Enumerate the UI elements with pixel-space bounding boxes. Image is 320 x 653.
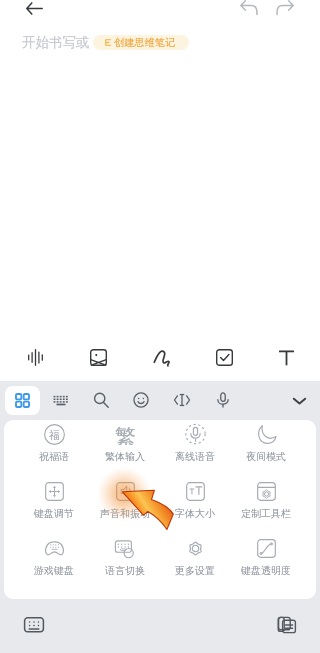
button[interactable]: 键盘调节 [19,481,89,531]
button[interactable]: Voice input [206,383,240,417]
staticText: 声音和振动 [100,507,150,520]
button[interactable]: Back [18,0,50,24]
staticText: 繁 [115,424,136,445]
button[interactable]: Handwriting [145,340,179,374]
button[interactable]: Text style [269,340,303,374]
button[interactable]: 键盘透明度 [231,538,301,588]
staticText: 祝福语 [39,450,69,463]
button[interactable]: 夜间模式 [231,424,301,474]
button[interactable]: 字体大小 [160,481,230,531]
button[interactable]: Clipboard [271,609,303,641]
button[interactable]: 离线语音 [160,424,230,474]
button[interactable]: Undo [233,0,265,24]
staticText: 字体大小 [175,507,215,520]
button[interactable]: Redo [269,0,301,24]
button[interactable]: Emoji [124,383,158,417]
button[interactable]: Panel menu [5,386,40,415]
staticText: 定制工具栏 [241,507,291,520]
button[interactable]: 游戏键盘 [19,538,89,588]
staticText: 福 [49,428,60,442]
button[interactable]: Collapse keyboard [282,383,316,417]
button[interactable]: Show keyboard [18,609,50,641]
button[interactable]: 语言切换 [90,538,160,588]
staticText: 游戏键盘 [34,564,74,577]
button[interactable]: Move cursor [165,383,199,417]
staticText: 键盘透明度 [241,564,291,577]
button[interactable]: 繁 [90,424,160,474]
button[interactable]: 创建思维笔记 [93,35,189,50]
button[interactable]: Keyboard [44,383,78,417]
button[interactable]: Search [84,383,118,417]
staticText: 离线语音 [175,450,215,463]
staticText: 创建思维笔记 [114,36,176,49]
staticText: 键盘调节 [34,507,74,520]
staticText: 更多设置 [175,564,215,577]
staticText: 语言切换 [105,564,145,577]
button[interactable]: 定制工具栏 [231,481,301,531]
button[interactable]: Voice note [18,340,52,374]
staticText: 夜间模式 [246,450,286,463]
staticText: 开始书写或 [22,34,90,50]
button[interactable]: 声音和振动 [90,481,160,531]
button[interactable]: Checklist [207,340,241,374]
button[interactable]: 福 [19,424,89,474]
button[interactable]: 更多设置 [160,538,230,588]
button[interactable]: Insert image [81,340,115,374]
staticText: 繁体输入 [105,450,145,463]
